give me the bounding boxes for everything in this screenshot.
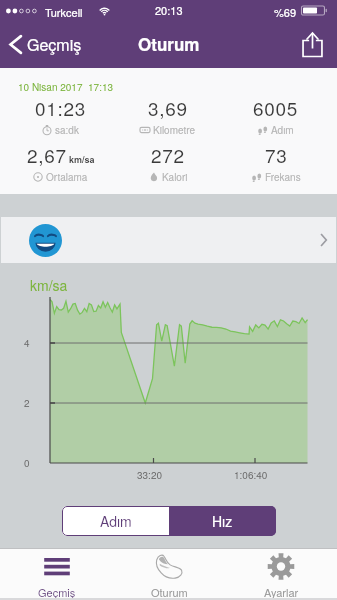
staticText: Geçmiş bbox=[27, 33, 82, 56]
button[interactable]: Oturum bbox=[113, 548, 225, 600]
staticText: Turkcell bbox=[45, 4, 83, 20]
staticText: 4 bbox=[24, 336, 30, 350]
staticText: 01:23 bbox=[35, 94, 87, 121]
staticText: 33:20 bbox=[137, 468, 163, 482]
staticText: Ortalama bbox=[46, 170, 88, 184]
staticText: Kalori bbox=[162, 170, 188, 184]
button[interactable]: Geçmiş bbox=[0, 548, 113, 600]
staticText: Oturum bbox=[138, 32, 200, 56]
staticText: km/sa bbox=[69, 153, 95, 166]
staticText: 3,69 bbox=[148, 94, 188, 121]
button[interactable]: Share bbox=[293, 22, 337, 68]
staticText: 2 bbox=[24, 396, 30, 410]
button[interactable]: Adım bbox=[62, 506, 169, 536]
staticText: 20:13 bbox=[155, 2, 183, 18]
staticText: Oturum bbox=[151, 584, 188, 600]
button[interactable]: Ayarlar bbox=[225, 548, 337, 600]
staticText: 1:06:40 bbox=[234, 468, 268, 482]
staticText: Kilometre bbox=[153, 123, 196, 137]
staticText: km/sa bbox=[30, 275, 68, 295]
staticText: Hız bbox=[212, 511, 233, 531]
staticText: 6005 bbox=[253, 94, 299, 121]
staticText: 73 bbox=[265, 141, 288, 168]
staticText: %69 bbox=[274, 4, 297, 20]
staticText: Frekans bbox=[265, 170, 301, 184]
button[interactable] bbox=[1, 217, 336, 263]
staticText: 10 Nisan 2017 17:13 bbox=[18, 80, 114, 94]
staticText: 2,67 bbox=[27, 141, 67, 168]
staticText: Ayarlar bbox=[264, 584, 299, 600]
button[interactable]: Hız bbox=[169, 506, 276, 536]
staticText: Adım bbox=[271, 123, 294, 137]
staticText: Adım bbox=[100, 511, 132, 531]
button[interactable]: Geçmiş bbox=[0, 22, 100, 68]
staticText: Geçmiş bbox=[38, 584, 76, 600]
staticText: sa:dk bbox=[55, 123, 79, 137]
staticText: 0 bbox=[24, 456, 30, 470]
staticText: 272 bbox=[151, 141, 185, 168]
